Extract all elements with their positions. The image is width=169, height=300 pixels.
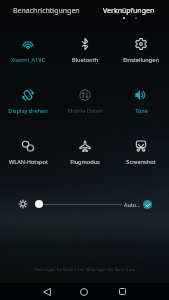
other: Brightness xyxy=(19,200,27,208)
button[interactable]: Bluetooth xyxy=(57,32,113,66)
staticText: Mobile Daten xyxy=(67,107,103,115)
button[interactable]: Brightness slider xyxy=(35,200,43,208)
button[interactable]: Flugmodus xyxy=(57,134,113,168)
staticText: WLAN-Hotspot xyxy=(9,158,48,166)
staticText: Töne xyxy=(135,107,148,115)
staticText: Bluetooth xyxy=(72,56,98,64)
button[interactable]: WLAN-Hotspot xyxy=(0,134,56,168)
button[interactable]: Back xyxy=(38,283,56,300)
staticText: Xiaomi_A19C xyxy=(11,56,45,64)
staticText: Verknüpfungen xyxy=(103,6,155,16)
button[interactable]: Home xyxy=(75,283,93,300)
staticText: Einstellungen xyxy=(123,56,159,64)
button[interactable]: Auto brightness xyxy=(143,200,152,209)
button[interactable]: Screenshot xyxy=(113,134,169,168)
button[interactable]: Display drehen xyxy=(0,83,56,117)
staticText: Flugmodus xyxy=(70,158,100,166)
button[interactable]: Töne xyxy=(113,83,169,117)
staticText: Benachrichtigungen xyxy=(13,6,80,16)
button[interactable]: Xiaomi_A19C xyxy=(0,32,56,66)
staticText: Screenshot xyxy=(126,158,156,166)
button[interactable]: Benachrichtigungen xyxy=(4,4,88,21)
button[interactable]: Verknüpfungen xyxy=(87,4,169,21)
button[interactable]: Mobile Daten xyxy=(57,83,113,117)
button[interactable]: Recent apps xyxy=(113,283,131,300)
button[interactable]: Einstellungen xyxy=(113,32,169,66)
staticText: Auto... xyxy=(124,201,141,208)
staticText: Bitte legen Sie Karte 1 ein • Bitte lege… xyxy=(35,267,135,272)
staticText: Display drehen xyxy=(8,107,48,115)
